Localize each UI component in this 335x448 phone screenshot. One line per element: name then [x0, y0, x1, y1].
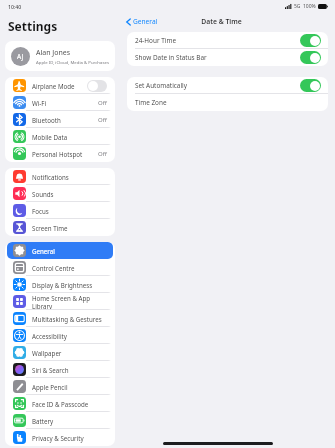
button[interactable]: On — [300, 79, 321, 92]
staticText: Battery — [32, 417, 54, 425]
button[interactable]: Off — [87, 80, 107, 92]
staticText: Screen Time — [32, 224, 68, 232]
button[interactable]: AJ — [5, 41, 115, 71]
button[interactable]: 24-Hour Time — [127, 32, 328, 49]
button[interactable]: General — [7, 242, 113, 259]
button[interactable]: Accessibility — [7, 327, 113, 344]
staticText: Alan Jones — [36, 48, 71, 58]
staticText: Notifications — [32, 173, 69, 181]
staticText: 5G — [294, 3, 301, 10]
staticText: Airplane Mode — [32, 82, 75, 90]
button[interactable]: Control Centre — [7, 259, 113, 276]
staticText: General — [133, 17, 158, 26]
button[interactable]: Bluetooth — [7, 111, 113, 128]
button[interactable]: Face ID & Passcode — [7, 395, 113, 412]
staticText: Apple ID, iCloud, Media & Purchases — [36, 59, 109, 65]
staticText: Off — [98, 150, 107, 158]
button[interactable]: Show Date in Status Bar — [127, 49, 328, 66]
staticText: Mobile Data — [32, 133, 68, 141]
staticText: AJ — [17, 52, 24, 61]
button[interactable]: General — [126, 17, 158, 26]
staticText: Show Date in Status Bar — [135, 53, 207, 62]
staticText: Apple Pencil — [32, 383, 68, 391]
button[interactable]: Home Screen & App Library — [7, 293, 113, 310]
button[interactable]: Sounds — [7, 185, 113, 202]
button[interactable]: Airplane Mode — [7, 77, 113, 94]
staticText: Off — [98, 99, 107, 107]
staticText: Sounds — [32, 190, 54, 198]
staticText: Wallpaper — [32, 349, 62, 357]
staticText: Wi-Fi — [32, 99, 47, 107]
staticText: Privacy & Security — [32, 434, 84, 442]
staticText: Siri & Search — [32, 366, 69, 374]
staticText: Multitasking & Gestures — [32, 315, 102, 323]
staticText: Off — [98, 116, 107, 124]
button[interactable]: Mobile Data — [7, 128, 113, 145]
staticText: Control Centre — [32, 264, 75, 272]
staticText: Accessibility — [32, 332, 67, 340]
staticText: Face ID & Passcode — [32, 400, 89, 408]
staticText: 24-Hour Time — [135, 36, 177, 45]
button[interactable]: Notifications — [7, 168, 113, 185]
staticText: Focus — [32, 207, 49, 215]
staticText: Personal Hotspot — [32, 150, 83, 158]
button[interactable]: Battery — [7, 412, 113, 429]
button[interactable]: Display & Brightness — [7, 276, 113, 293]
button[interactable]: On — [300, 51, 321, 64]
button[interactable]: Privacy & Security — [7, 429, 113, 446]
button[interactable]: On — [300, 34, 321, 47]
staticText: 100% — [303, 3, 316, 10]
button[interactable]: Multitasking & Gestures — [7, 310, 113, 327]
button[interactable]: Focus — [7, 202, 113, 219]
button[interactable]: Wi-Fi — [7, 94, 113, 111]
button[interactable]: Screen Time — [7, 219, 113, 236]
staticText: Home Screen & App Library — [32, 294, 107, 310]
staticText: Bluetooth — [32, 116, 61, 124]
button[interactable]: Time Zone — [127, 94, 328, 111]
button[interactable]: Apple Pencil — [7, 378, 113, 395]
staticText: 10:40 — [8, 3, 22, 10]
button[interactable]: Siri & Search — [7, 361, 113, 378]
button[interactable]: Personal Hotspot — [7, 145, 113, 162]
button[interactable]: Set Automatically — [127, 77, 328, 94]
button[interactable]: Wallpaper — [7, 344, 113, 361]
staticText: Settings — [8, 18, 58, 34]
staticText: Time Zone — [135, 98, 167, 107]
staticText: Date & Time — [201, 17, 242, 26]
staticText: General — [32, 247, 55, 255]
staticText: Display & Brightness — [32, 281, 93, 289]
staticText: Set Automatically — [135, 81, 188, 90]
